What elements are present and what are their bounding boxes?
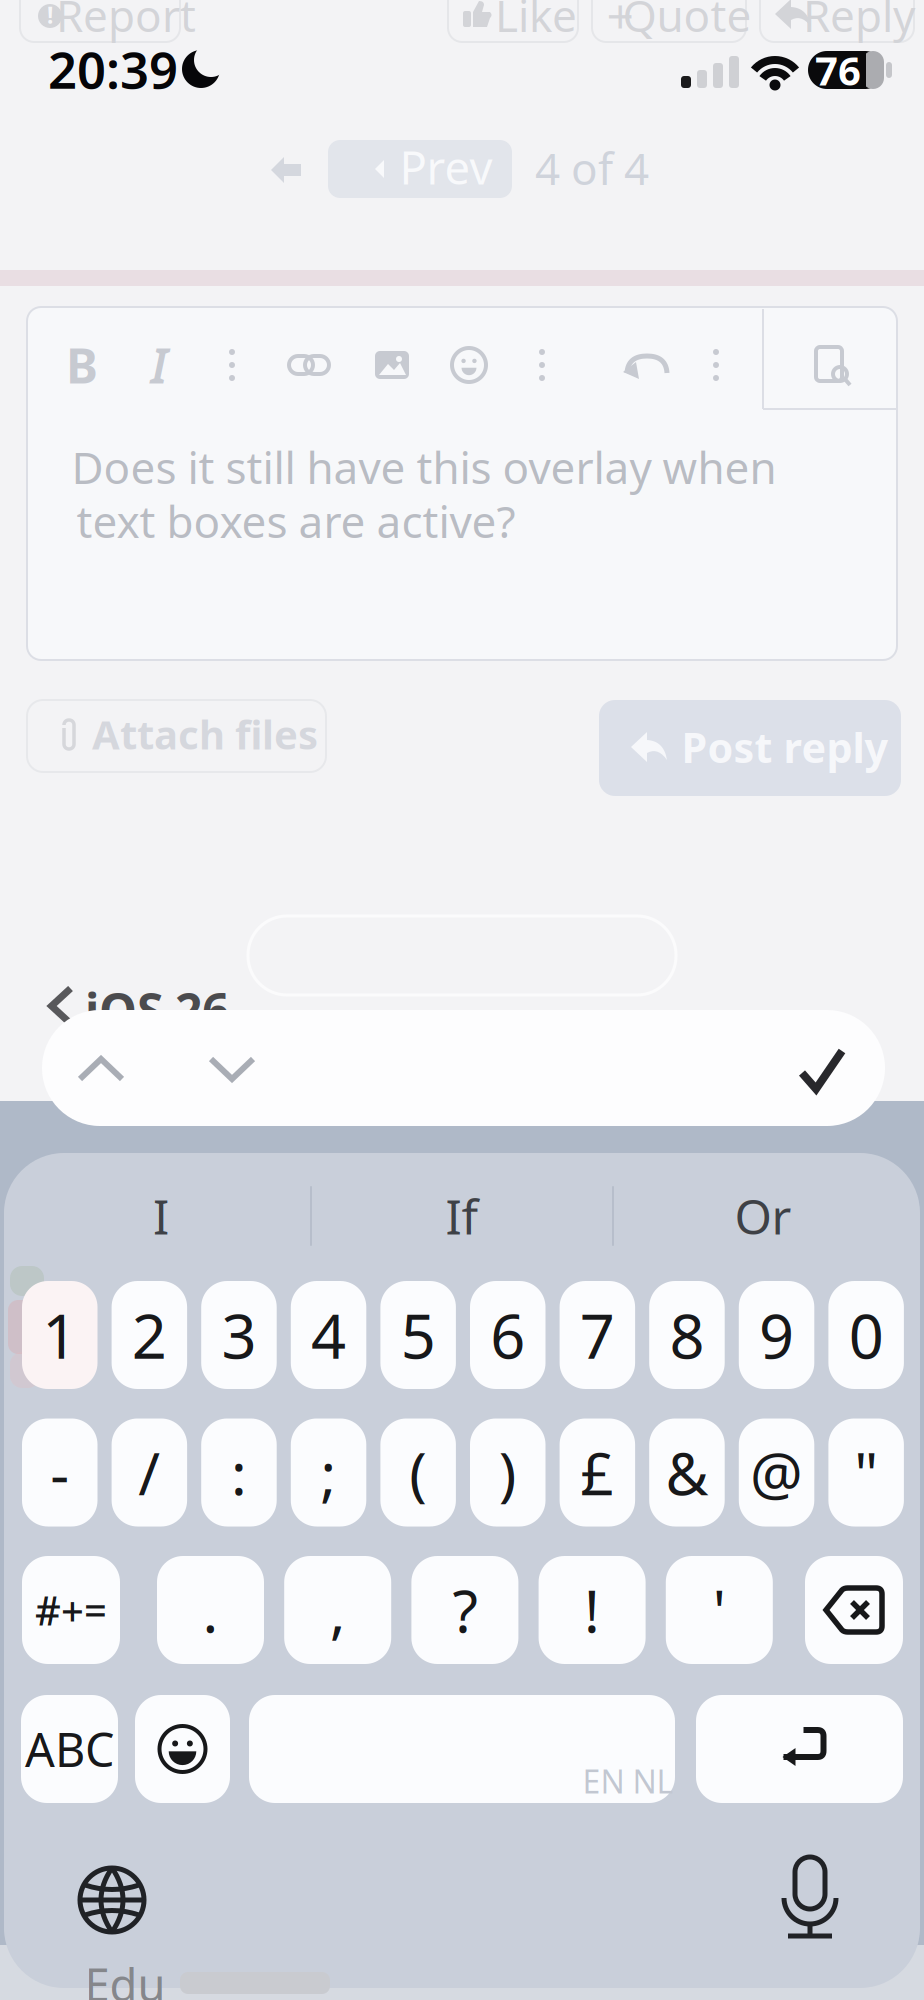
staticText: 6 [490,1294,525,1376]
staticText: Report [56,0,196,44]
button[interactable]: Space [249,1695,675,1803]
staticText: If [445,1184,478,1248]
button[interactable]: Next field [197,1039,267,1099]
staticText: ! [47,0,53,30]
staticText: iOS 26 [85,978,229,1042]
button[interactable]: Undo [620,341,670,391]
button[interactable]: 1 [22,1281,97,1389]
staticText: text boxes are active? [76,492,515,550]
staticText: 4 of 4 [535,139,649,197]
staticText: #+= [35,1583,107,1636]
staticText: Does it still have this overlay when [71,438,776,496]
button[interactable]: 5 [380,1281,456,1389]
button[interactable]: 8 [649,1281,725,1389]
staticText: 76 [815,43,861,96]
button[interactable]: @ [739,1418,814,1526]
staticText: 0 [849,1294,884,1376]
staticText: ' [713,1571,726,1649]
staticText: 9 [759,1294,794,1376]
staticText: ? [452,1571,477,1649]
button[interactable]: 3 [201,1281,277,1389]
staticText: ABC [25,1718,114,1780]
staticText: Or [734,1184,791,1248]
button[interactable]: Done [798,1047,846,1093]
staticText: ) [499,1433,517,1511]
staticText: & [665,1433,708,1511]
staticText: Quote [622,0,751,44]
button[interactable]: " [828,1418,904,1526]
button[interactable]: Emoji keyboard [135,1695,230,1803]
staticText: - [50,1433,69,1511]
staticText: ; [320,1433,336,1511]
button[interactable]: ! [539,1556,646,1664]
button[interactable]: ABC [21,1695,118,1803]
staticText: 7 [580,1294,615,1376]
button[interactable]: Previous field [66,1039,136,1099]
button[interactable]: Reply [760,0,914,42]
button[interactable]: First page [271,156,301,184]
button[interactable]: Back to iOS 26 [24,982,264,1046]
button[interactable]: More formatting [212,340,252,390]
staticText: 5 [401,1294,436,1376]
button[interactable]: , [284,1556,391,1664]
staticText: Attach files [92,707,318,760]
button[interactable]: 2 [112,1281,187,1389]
staticText: 8 [669,1294,704,1376]
button[interactable]: History options [696,340,736,390]
button[interactable]: ( [380,1418,456,1526]
button[interactable]: : [201,1418,277,1526]
staticText: 4 [311,1294,346,1376]
button[interactable]: Like [448,0,578,42]
button[interactable]: #+= [22,1556,120,1664]
button[interactable]: Post reply [599,700,901,796]
button[interactable]: Insert image [367,340,417,390]
button[interactable]: Attach files [27,700,326,772]
staticText: 1 [42,1294,77,1376]
staticText: 3 [221,1294,256,1376]
staticText: I [153,1184,169,1248]
button[interactable]: 7 [560,1281,635,1389]
button[interactable]: + [592,0,746,42]
button[interactable]: . [157,1556,264,1664]
staticText: 2 [132,1294,167,1376]
button[interactable]: Return [696,1695,903,1803]
staticText: 20:39 [48,35,178,103]
button[interactable]: / [112,1418,187,1526]
button[interactable]: Preview [806,339,862,395]
staticText: Reply [803,0,915,44]
button[interactable]: ) [470,1418,545,1526]
button[interactable]: Bold [57,340,107,390]
button[interactable]: 9 [739,1281,814,1389]
staticText: Like [495,0,577,44]
staticText: I [150,333,167,397]
button[interactable]: & [649,1418,725,1526]
staticText: / [138,1433,160,1511]
button[interactable]: Delete [805,1556,903,1664]
staticText: EN NL [582,1760,673,1802]
button[interactable]: Next keyboard [74,1862,150,1938]
button[interactable]: ; [291,1418,366,1526]
button[interactable]: Emoji [444,340,494,390]
staticText: £ [580,1433,614,1511]
staticText: + [606,0,633,47]
button[interactable]: - [22,1418,97,1526]
staticText: " [854,1433,878,1511]
button[interactable]: ! [20,0,180,42]
staticText: , [330,1571,346,1649]
staticText: ( [409,1433,427,1511]
button[interactable]: Italic [134,340,184,390]
button[interactable]: ? [411,1556,518,1664]
button[interactable]: Insert link [284,340,334,390]
button[interactable]: £ [560,1418,635,1526]
button[interactable]: ' [666,1556,773,1664]
button[interactable]: Prev [328,140,512,198]
button[interactable]: 6 [470,1281,545,1389]
button[interactable]: More options [522,340,562,390]
button[interactable]: Dictation [772,1854,848,1942]
staticText: @ [750,1433,803,1511]
staticText: . [202,1571,218,1649]
button[interactable]: 4 [291,1281,366,1389]
staticText: Post reply [681,720,888,774]
staticText: ! [584,1571,600,1649]
button[interactable]: 0 [828,1281,904,1389]
